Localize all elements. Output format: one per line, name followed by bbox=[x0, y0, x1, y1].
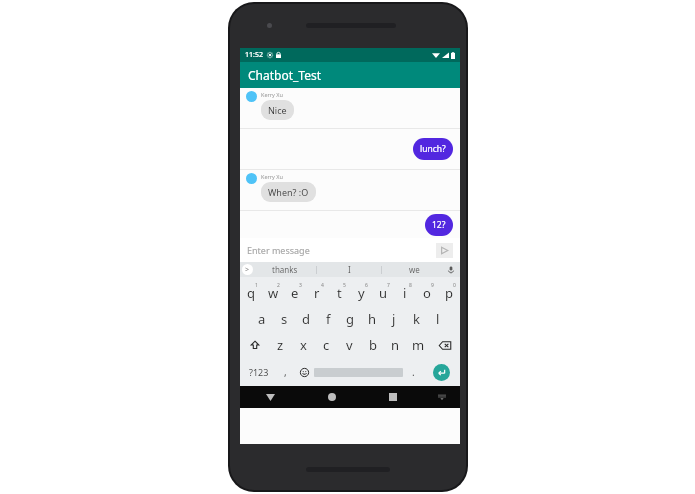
button[interactable]: b bbox=[361, 332, 384, 358]
button[interactable]: , bbox=[277, 358, 294, 386]
staticText: u bbox=[379, 284, 388, 302]
staticText: When? :O bbox=[268, 186, 309, 198]
staticText: 1 bbox=[255, 282, 258, 289]
staticText: , bbox=[284, 365, 287, 379]
staticText: 5 bbox=[343, 282, 346, 289]
staticText: d bbox=[302, 310, 310, 328]
button[interactable]: w bbox=[262, 280, 284, 306]
staticText: 2 bbox=[277, 282, 280, 289]
staticText: t bbox=[337, 284, 342, 302]
button[interactable]: z bbox=[269, 332, 292, 358]
staticText: w bbox=[268, 284, 279, 302]
button[interactable]: Space bbox=[314, 366, 403, 378]
button[interactable]: thanks bbox=[253, 262, 316, 277]
staticText: e bbox=[291, 284, 299, 302]
button[interactable]: x bbox=[292, 332, 315, 358]
staticText: lunch? bbox=[420, 143, 446, 155]
staticText: h bbox=[368, 310, 377, 328]
button[interactable]: r bbox=[306, 280, 328, 306]
staticText: 6 bbox=[365, 282, 368, 289]
button[interactable]: f bbox=[317, 306, 339, 332]
staticText: 9 bbox=[431, 282, 434, 289]
staticText: 0 bbox=[453, 282, 456, 289]
button[interactable]: y bbox=[350, 280, 372, 306]
staticText: Kerry Xu bbox=[261, 91, 283, 98]
button[interactable]: l bbox=[427, 306, 449, 332]
button[interactable]: More suggestions bbox=[242, 264, 253, 275]
staticText: p bbox=[445, 284, 453, 302]
button[interactable]: i bbox=[394, 280, 416, 306]
button[interactable]: I bbox=[317, 262, 381, 277]
staticText: > bbox=[245, 265, 250, 275]
staticText: k bbox=[413, 310, 420, 328]
staticText: x bbox=[300, 336, 307, 354]
staticText: f bbox=[326, 310, 331, 328]
button[interactable]: Kerry Xu bbox=[240, 88, 460, 128]
staticText: 11:52 bbox=[245, 50, 263, 60]
staticText: r bbox=[314, 284, 320, 302]
staticText: . bbox=[412, 365, 415, 379]
button[interactable]: u bbox=[372, 280, 394, 306]
staticText: I bbox=[348, 264, 351, 275]
staticText: y bbox=[358, 284, 365, 302]
button[interactable]: Backspace bbox=[430, 332, 460, 358]
staticText: b bbox=[369, 336, 377, 354]
staticText: 12? bbox=[432, 219, 446, 231]
staticText: 3 bbox=[299, 282, 302, 289]
button[interactable]: k bbox=[405, 306, 427, 332]
staticText: thanks bbox=[272, 264, 298, 275]
button[interactable]: v bbox=[338, 332, 361, 358]
staticText: a bbox=[258, 310, 266, 328]
button[interactable]: e bbox=[284, 280, 306, 306]
button[interactable]: j bbox=[383, 306, 405, 332]
button[interactable]: t bbox=[328, 280, 350, 306]
staticText: Kerry Xu bbox=[261, 173, 283, 180]
staticText: 8 bbox=[409, 282, 412, 289]
button[interactable]: 12? bbox=[240, 211, 460, 238]
button[interactable]: g bbox=[339, 306, 361, 332]
staticText: Chatbot_Test bbox=[248, 67, 322, 83]
staticText: g bbox=[346, 310, 354, 328]
button[interactable]: Shift bbox=[240, 332, 269, 358]
button[interactable]: Recents bbox=[362, 386, 423, 408]
staticText: n bbox=[391, 336, 400, 354]
button[interactable]: lunch? bbox=[240, 129, 460, 169]
staticText: 7 bbox=[387, 282, 390, 289]
button[interactable]: Enter bbox=[433, 364, 450, 381]
staticText: 4 bbox=[321, 282, 324, 289]
button[interactable]: Send bbox=[436, 243, 453, 258]
button[interactable]: ?123 bbox=[240, 358, 277, 386]
staticText: ?123 bbox=[249, 366, 269, 378]
button[interactable]: Voice input bbox=[446, 265, 456, 275]
button[interactable]: m bbox=[407, 332, 430, 358]
button[interactable]: Enter message bbox=[247, 244, 436, 256]
button[interactable]: Back bbox=[240, 386, 301, 408]
button[interactable]: c bbox=[315, 332, 338, 358]
button[interactable]: . bbox=[403, 358, 423, 386]
staticText: Enter message bbox=[247, 244, 310, 256]
button[interactable]: Emoji bbox=[294, 358, 314, 386]
button[interactable]: d bbox=[295, 306, 317, 332]
staticText: Nice bbox=[268, 104, 287, 116]
staticText: l bbox=[436, 310, 440, 328]
button[interactable]: p bbox=[438, 280, 460, 306]
staticText: q bbox=[247, 284, 255, 302]
button[interactable]: s bbox=[273, 306, 295, 332]
button[interactable]: Chatbot_Test bbox=[240, 62, 460, 88]
button[interactable]: a bbox=[251, 306, 273, 332]
button[interactable]: Home bbox=[301, 386, 362, 408]
button[interactable]: h bbox=[361, 306, 383, 332]
staticText: j bbox=[392, 310, 396, 328]
staticText: c bbox=[323, 336, 330, 354]
button[interactable]: q bbox=[240, 280, 262, 306]
button[interactable]: n bbox=[384, 332, 407, 358]
staticText: v bbox=[346, 336, 353, 354]
staticText: o bbox=[423, 284, 431, 302]
button[interactable]: Kerry Xu bbox=[240, 170, 460, 210]
button[interactable]: Switch keyboard bbox=[423, 386, 460, 408]
button[interactable]: o bbox=[416, 280, 438, 306]
staticText: m bbox=[412, 336, 425, 354]
staticText: i bbox=[403, 284, 407, 302]
button[interactable]: we bbox=[382, 262, 446, 277]
staticText: z bbox=[277, 336, 284, 354]
